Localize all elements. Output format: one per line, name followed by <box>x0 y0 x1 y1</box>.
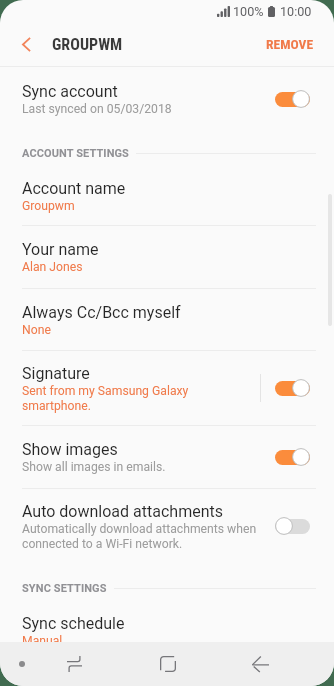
button[interactable]: Recents <box>28 642 121 686</box>
staticText: 10:00 <box>280 4 312 19</box>
button[interactable]: Sync account <box>0 67 334 130</box>
staticText: SYNC SETTINGS <box>22 582 107 595</box>
staticText: Account name <box>22 179 126 198</box>
staticText: Sent from my Samsung Galaxy smartphone. <box>22 384 189 413</box>
staticText: Auto download attachments <box>22 502 223 521</box>
button[interactable]: Navigate up <box>0 22 52 66</box>
staticText: None <box>22 323 51 337</box>
staticText: Signature <box>22 364 90 383</box>
staticText: Manual <box>22 634 63 642</box>
staticText: Alan Jones <box>22 260 83 274</box>
staticText: 100% <box>233 4 264 19</box>
staticText: Sync account <box>22 82 118 101</box>
button[interactable]: Show images <box>0 426 334 488</box>
staticText: Last synced on 05/03/2018 <box>22 102 172 116</box>
button[interactable]: Your name <box>0 226 334 288</box>
button[interactable]: REMOVE <box>246 22 334 66</box>
staticText: REMOVE <box>266 36 314 52</box>
button[interactable]: Always Cc/Bcc myself <box>0 289 334 350</box>
button[interactable]: On <box>275 379 310 397</box>
button[interactable]: Home <box>121 642 214 686</box>
button[interactable]: Sync schedule <box>0 614 334 642</box>
button[interactable]: On <box>275 448 310 466</box>
button[interactable]: Off <box>275 517 310 535</box>
staticText: Always Cc/Bcc myself <box>22 303 181 322</box>
staticText: Sync schedule <box>22 614 125 633</box>
button[interactable]: Auto download attachments <box>0 489 334 563</box>
button[interactable]: Account name <box>0 166 334 225</box>
button[interactable]: Signature <box>0 351 334 425</box>
staticText: Groupwm <box>22 199 75 213</box>
staticText: Your name <box>22 240 99 259</box>
button[interactable]: On <box>275 90 310 108</box>
staticText: Automatically download attachments when … <box>22 522 257 551</box>
staticText: Show all images in emails. <box>22 460 166 474</box>
staticText: GROUPWM <box>52 35 123 54</box>
staticText: ACCOUNT SETTINGS <box>22 147 129 160</box>
staticText: Show images <box>22 440 118 459</box>
button[interactable]: Back <box>214 642 307 686</box>
